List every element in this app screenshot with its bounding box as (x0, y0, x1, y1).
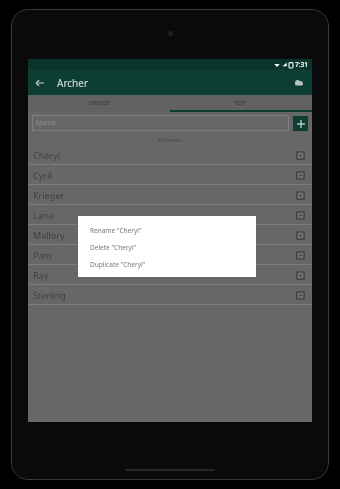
button[interactable]: Lana (28, 205, 312, 225)
button[interactable]: Options for Mallory (294, 229, 307, 242)
staticText: Mallory (33, 229, 65, 241)
button[interactable]: EDIT (170, 95, 312, 112)
button[interactable]: Options for Lana (294, 209, 307, 222)
button[interactable]: Cyril (28, 165, 312, 185)
staticText: 7:31 (295, 60, 308, 69)
button[interactable]: Name (32, 115, 289, 131)
staticText: Name (36, 118, 56, 128)
button[interactable]: Options for Cyril (294, 169, 307, 182)
button[interactable]: Options for Sterling (294, 289, 307, 302)
button[interactable]: Mallory (28, 225, 312, 245)
staticText: Pam (33, 249, 52, 261)
staticText: Ray (33, 269, 49, 281)
staticText: Cyril (33, 169, 52, 181)
staticText: Lana (33, 209, 54, 221)
staticText: CHOOSE (89, 100, 110, 107)
staticText: Duplicate "Cheryl" (90, 260, 146, 269)
button[interactable]: Cloud (286, 70, 312, 95)
button[interactable]: CHOOSE (28, 95, 170, 112)
button[interactable]: Options for Cheryl (294, 149, 307, 162)
staticText: Sterling (33, 289, 66, 301)
button[interactable]: Delete "Cheryl" (90, 239, 256, 256)
button[interactable]: Ray (28, 265, 312, 285)
button[interactable]: Add name (293, 116, 308, 131)
staticText: Rename "Cheryl" (90, 226, 142, 235)
button[interactable]: Options for Pam (294, 249, 307, 262)
button[interactable]: Rename "Cheryl" (90, 222, 256, 239)
button[interactable]: Pam (28, 245, 312, 265)
staticText: Cheryl (33, 149, 60, 161)
button[interactable]: Options for Ray (294, 269, 307, 282)
button[interactable]: Duplicate "Cheryl" (90, 256, 256, 273)
staticText: 8 names (158, 136, 182, 144)
staticText: Delete "Cheryl" (90, 243, 137, 252)
staticText: EDIT (235, 100, 247, 107)
button[interactable]: Sterling (28, 285, 312, 305)
staticText: Archer (57, 76, 89, 90)
button[interactable]: Options for Krieger (294, 189, 307, 202)
staticText: Krieger (33, 189, 65, 201)
button[interactable]: Back (28, 71, 52, 95)
button[interactable]: Krieger (28, 185, 312, 205)
button[interactable]: Cheryl (28, 145, 312, 165)
